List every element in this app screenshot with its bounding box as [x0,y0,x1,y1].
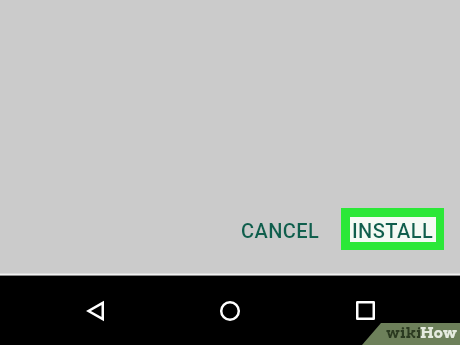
staticText: INSTALL [352,219,434,242]
button[interactable]: Home [210,291,250,331]
staticText: wiki [386,324,423,342]
button[interactable]: INSTALL [341,208,444,250]
button[interactable]: CANCEL [228,210,332,250]
staticText: How [420,324,457,342]
button[interactable]: Recent apps [345,290,385,330]
button[interactable]: Back [75,291,115,331]
staticText: CANCEL [241,219,320,242]
